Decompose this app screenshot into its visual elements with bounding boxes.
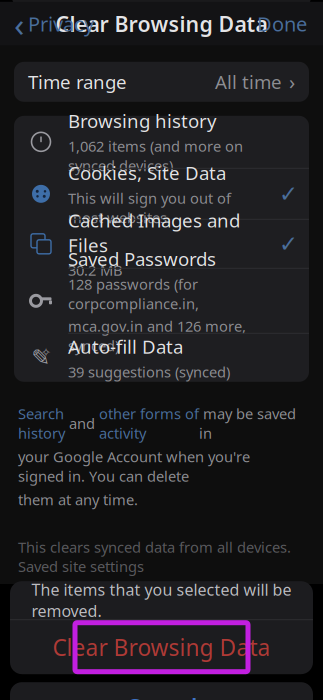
staticText: Clear Browsing Data <box>52 632 270 662</box>
staticText: ✎ <box>31 345 50 371</box>
button[interactable]: Browsing history <box>14 116 309 168</box>
staticText: 128 passwords (for corpcompliance.in, <box>68 274 199 313</box>
staticText: 39 suggestions (synced) <box>68 362 230 381</box>
staticText: Cookies, Site Data <box>68 160 226 185</box>
staticText: Saved Passwords <box>68 246 216 271</box>
staticText: ‹ <box>14 2 24 46</box>
staticText: 1,062 items (and more on synced devices) <box>68 136 243 175</box>
button[interactable]: Done <box>245 2 319 46</box>
staticText: Cached Images and Files <box>68 208 240 257</box>
staticText: The items that you selected will be remo… <box>31 579 291 621</box>
staticText: ✓ <box>279 231 298 257</box>
button[interactable]: Cached Images and Files <box>14 220 309 268</box>
button[interactable]: Cookies, Site Data <box>14 169 309 219</box>
button[interactable]: Clear Browsing Data <box>10 620 313 674</box>
button[interactable]: Saved Passwords <box>14 269 309 333</box>
button[interactable]: Time range <box>14 62 309 102</box>
staticText: All time <box>215 69 282 94</box>
staticText: ✓ <box>279 181 298 207</box>
staticText: Privacy <box>28 10 94 37</box>
staticText: mca.gov.in and 126 more, synced) <box>68 316 246 355</box>
staticText: Browsing history <box>68 108 217 133</box>
staticText: and <box>65 414 99 433</box>
staticText: ✧ <box>41 345 51 359</box>
button[interactable]: ‹ <box>4 2 104 46</box>
staticText: Clear Browsing Data <box>55 10 267 38</box>
staticText: your Google Account when you're signed i… <box>18 447 250 486</box>
button[interactable]: ✧ <box>14 334 309 382</box>
staticText: This will sign you out of most websites. <box>68 188 231 227</box>
staticText: This clears synced data from all devices… <box>18 537 291 576</box>
staticText: › <box>289 68 295 95</box>
button[interactable]: Cancel <box>10 682 313 700</box>
staticText: 30.2 MB <box>68 260 123 280</box>
staticText: Auto-fill Data <box>68 334 183 359</box>
staticText: Cancel <box>126 692 197 700</box>
staticText: Time range <box>28 69 127 94</box>
staticText: other forms of activity <box>99 404 199 443</box>
staticText: Done <box>257 10 307 37</box>
staticText: them at any time. <box>18 490 138 509</box>
staticText: may be saved in <box>199 404 296 443</box>
staticText: Search history <box>18 404 65 443</box>
